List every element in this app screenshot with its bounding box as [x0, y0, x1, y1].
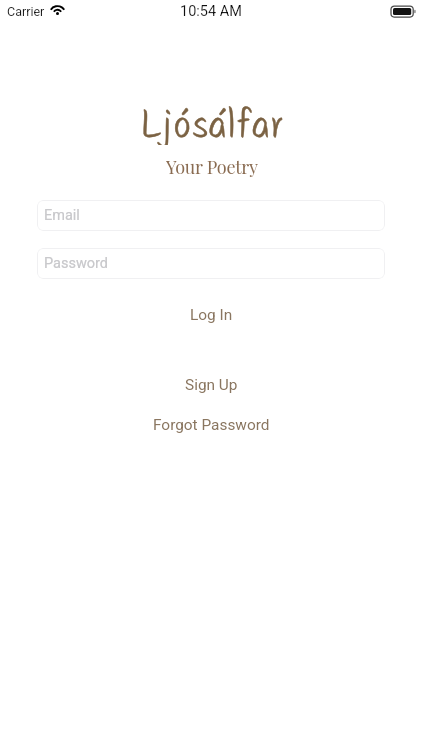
staticText: Password: [44, 255, 109, 272]
staticText: Carrier: [7, 4, 45, 19]
staticText: Ljósálfar: [143, 95, 288, 145]
staticText: Log In: [190, 306, 233, 324]
button[interactable]: Log In: [0, 303, 422, 327]
button[interactable]: Sign Up: [0, 373, 422, 397]
button[interactable]: Forgot Password: [0, 413, 422, 437]
staticText: 10:54 AM: [180, 3, 242, 20]
staticText: Ljósálfar: [143, 95, 288, 145]
other: Wi-Fi signal: [50, 3, 65, 18]
staticText: Forgot Password: [153, 416, 270, 434]
button[interactable]: Email: [37, 200, 385, 231]
staticText: Sign Up: [185, 376, 238, 394]
button[interactable]: Password: [37, 248, 385, 279]
staticText: Email: [44, 207, 80, 224]
other: Battery full: [391, 6, 416, 17]
staticText: Your Poetry: [166, 155, 258, 177]
